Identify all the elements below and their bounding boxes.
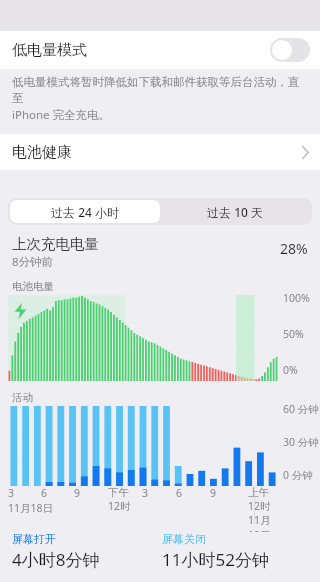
staticText: 低电量模式 xyxy=(12,41,87,60)
staticText: 0 分钟 xyxy=(283,468,313,482)
staticText: 8分钟前 xyxy=(12,254,54,270)
staticText: 12时 xyxy=(248,499,271,513)
staticText: 屏幕关闭 xyxy=(162,532,206,546)
button[interactable]: 过去 24 小时 xyxy=(10,200,160,223)
staticText: 6 xyxy=(176,486,183,500)
staticText: 屏幕打开 xyxy=(12,532,56,546)
staticText: 活动 xyxy=(12,391,33,404)
button[interactable]: 过去 10 天 xyxy=(160,200,310,223)
staticText: 上午 xyxy=(248,486,269,499)
staticText: 9 xyxy=(210,486,217,500)
staticText: 11月19日 xyxy=(248,513,282,532)
button[interactable]: 电池健康 xyxy=(0,134,320,170)
staticText: 11小时52分钟 xyxy=(162,548,269,570)
staticText: 50% xyxy=(283,327,304,341)
staticText: 低电量模式将暂时降低如下载和邮件获取等后台活动，直至 iPhone 完全充电。 xyxy=(12,75,310,122)
button[interactable]: 低电量模式 xyxy=(0,31,320,69)
staticText: 下午 xyxy=(108,486,129,499)
staticText: 60 分钟 xyxy=(283,402,319,416)
staticText: 28% xyxy=(280,239,308,258)
staticText: 100% xyxy=(283,291,310,305)
staticText: 过去 10 天 xyxy=(207,204,263,220)
staticText: 4小时8分钟 xyxy=(12,548,100,570)
staticText: 电池健康 xyxy=(12,143,72,162)
staticText: 过去 24 小时 xyxy=(51,204,119,220)
staticText: 3 xyxy=(142,486,149,500)
staticText: 电池电量 xyxy=(12,280,54,293)
button[interactable]: 低电量模式开关 xyxy=(270,38,310,62)
staticText: 6 xyxy=(41,486,48,500)
staticText: 3 xyxy=(8,486,15,500)
staticText: 9 xyxy=(74,486,81,500)
staticText: 11月18日 xyxy=(8,501,54,515)
staticText: 0% xyxy=(283,363,298,377)
staticText: 12时 xyxy=(108,499,131,513)
staticText: 30 分钟 xyxy=(283,435,319,449)
staticText: 上次充电电量 xyxy=(12,235,99,253)
